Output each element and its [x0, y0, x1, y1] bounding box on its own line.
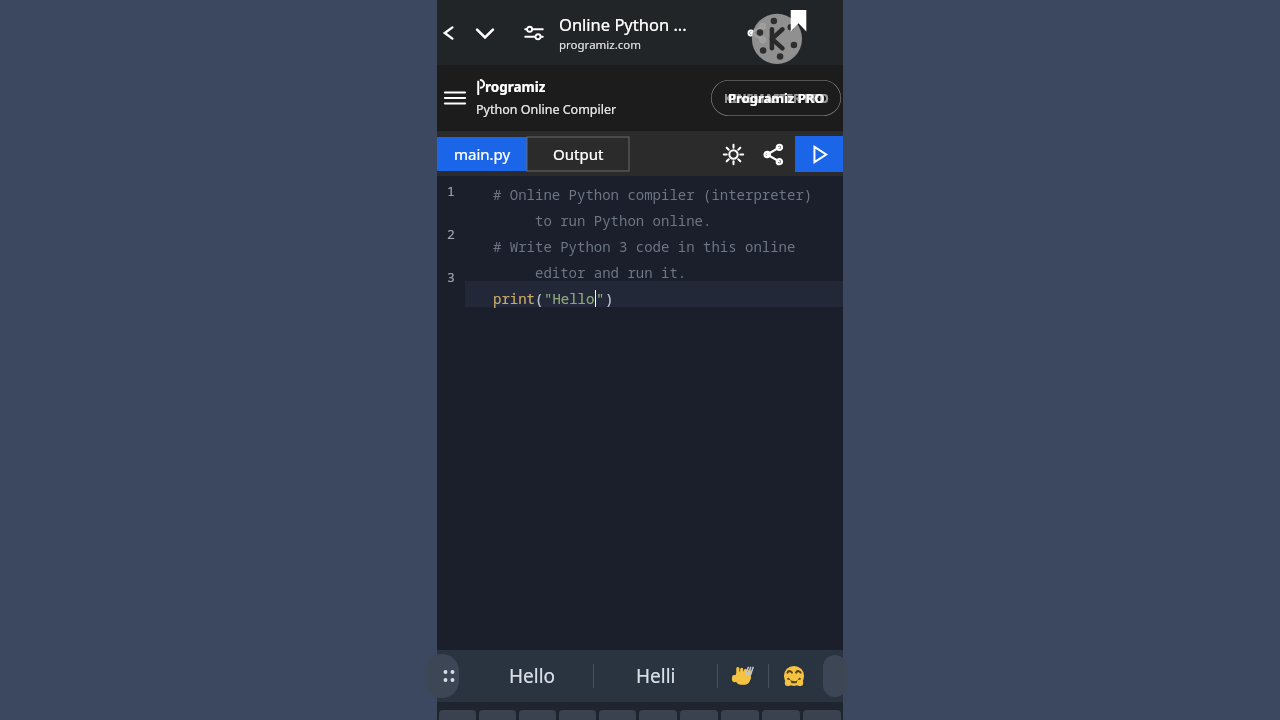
staticText: 3 [447, 268, 455, 286]
staticText: "Hello [544, 289, 595, 308]
button[interactable]: Programiz PRO [711, 80, 841, 116]
staticText: programiz.com [559, 37, 642, 53]
staticText: Online Python ... [559, 13, 687, 35]
button[interactable] [803, 710, 841, 720]
button[interactable]: Site settings [511, 0, 557, 65]
staticText: 2 [447, 225, 455, 243]
button[interactable]: Back [437, 0, 459, 65]
staticText: Output [553, 144, 604, 164]
staticText: to run Python online. [493, 211, 712, 230]
staticText: # Online Python compiler (interpreter) [493, 185, 813, 204]
staticText: Python Online Compiler [476, 101, 617, 118]
staticText: editor and run it. [493, 263, 687, 282]
staticText: Programiz PRO [728, 89, 825, 107]
button[interactable]: Toolbar [437, 650, 471, 702]
staticText: " [596, 289, 605, 308]
button[interactable]: Smiling emoji [769, 650, 819, 702]
staticText: KINEMASTER PRO [724, 90, 829, 106]
staticText: rogramiz [485, 78, 546, 96]
staticText: ( [535, 289, 544, 308]
button[interactable] [559, 710, 596, 720]
staticText: # Write Python 3 code in this online [493, 237, 796, 256]
staticText: main.py [454, 144, 511, 164]
button[interactable]: Share code [753, 134, 793, 174]
button[interactable] [680, 710, 718, 720]
button[interactable] [639, 710, 677, 720]
staticText: Hello [509, 663, 556, 689]
button[interactable]: Share [737, 0, 777, 65]
button[interactable] [439, 710, 476, 720]
button[interactable] [762, 710, 800, 720]
button[interactable]: Theme [713, 134, 753, 174]
button[interactable]: Hello [471, 650, 593, 702]
staticText: Helli [636, 663, 676, 689]
staticText: ) [605, 289, 614, 308]
button[interactable] [599, 710, 636, 720]
button[interactable]: Expand [459, 0, 511, 65]
button[interactable]: Waving hand emoji [718, 650, 768, 702]
button[interactable] [479, 710, 516, 720]
staticText: print [493, 289, 535, 308]
button[interactable]: Helli [594, 650, 717, 702]
button[interactable]: Menu [437, 65, 473, 131]
button[interactable] [819, 650, 843, 702]
staticText: 1 [447, 182, 455, 200]
button[interactable]: Output [527, 137, 629, 171]
button[interactable] [721, 710, 759, 720]
button[interactable]: Run [795, 136, 843, 172]
button[interactable] [519, 710, 556, 720]
button[interactable]: main.py [437, 137, 527, 171]
